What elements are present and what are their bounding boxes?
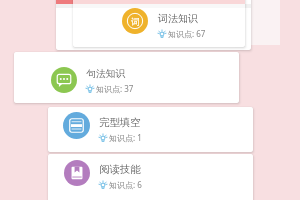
- staticText: 阅读技能: [99, 163, 141, 176]
- button[interactable]: [14, 52, 239, 103]
- staticText: 完型填空: [99, 116, 141, 129]
- staticText: 知识点: 67: [168, 28, 206, 39]
- button[interactable]: 阅读技能: [64, 160, 90, 186]
- staticText: 知识点: 1: [109, 132, 142, 143]
- button[interactable]: 句法知识: [51, 67, 77, 93]
- button[interactable]: 完型填空: [63, 112, 90, 139]
- staticText: 词法知识: [158, 12, 198, 25]
- button[interactable]: [73, 0, 245, 47]
- staticText: 词: [131, 16, 140, 27]
- button[interactable]: [48, 107, 253, 152]
- button[interactable]: 词法知识: [122, 8, 148, 34]
- staticText: 句法知识: [86, 68, 126, 80]
- button[interactable]: [48, 154, 253, 200]
- staticText: 知识点: 37: [96, 83, 134, 94]
- staticText: 知识点: 6: [109, 179, 142, 190]
